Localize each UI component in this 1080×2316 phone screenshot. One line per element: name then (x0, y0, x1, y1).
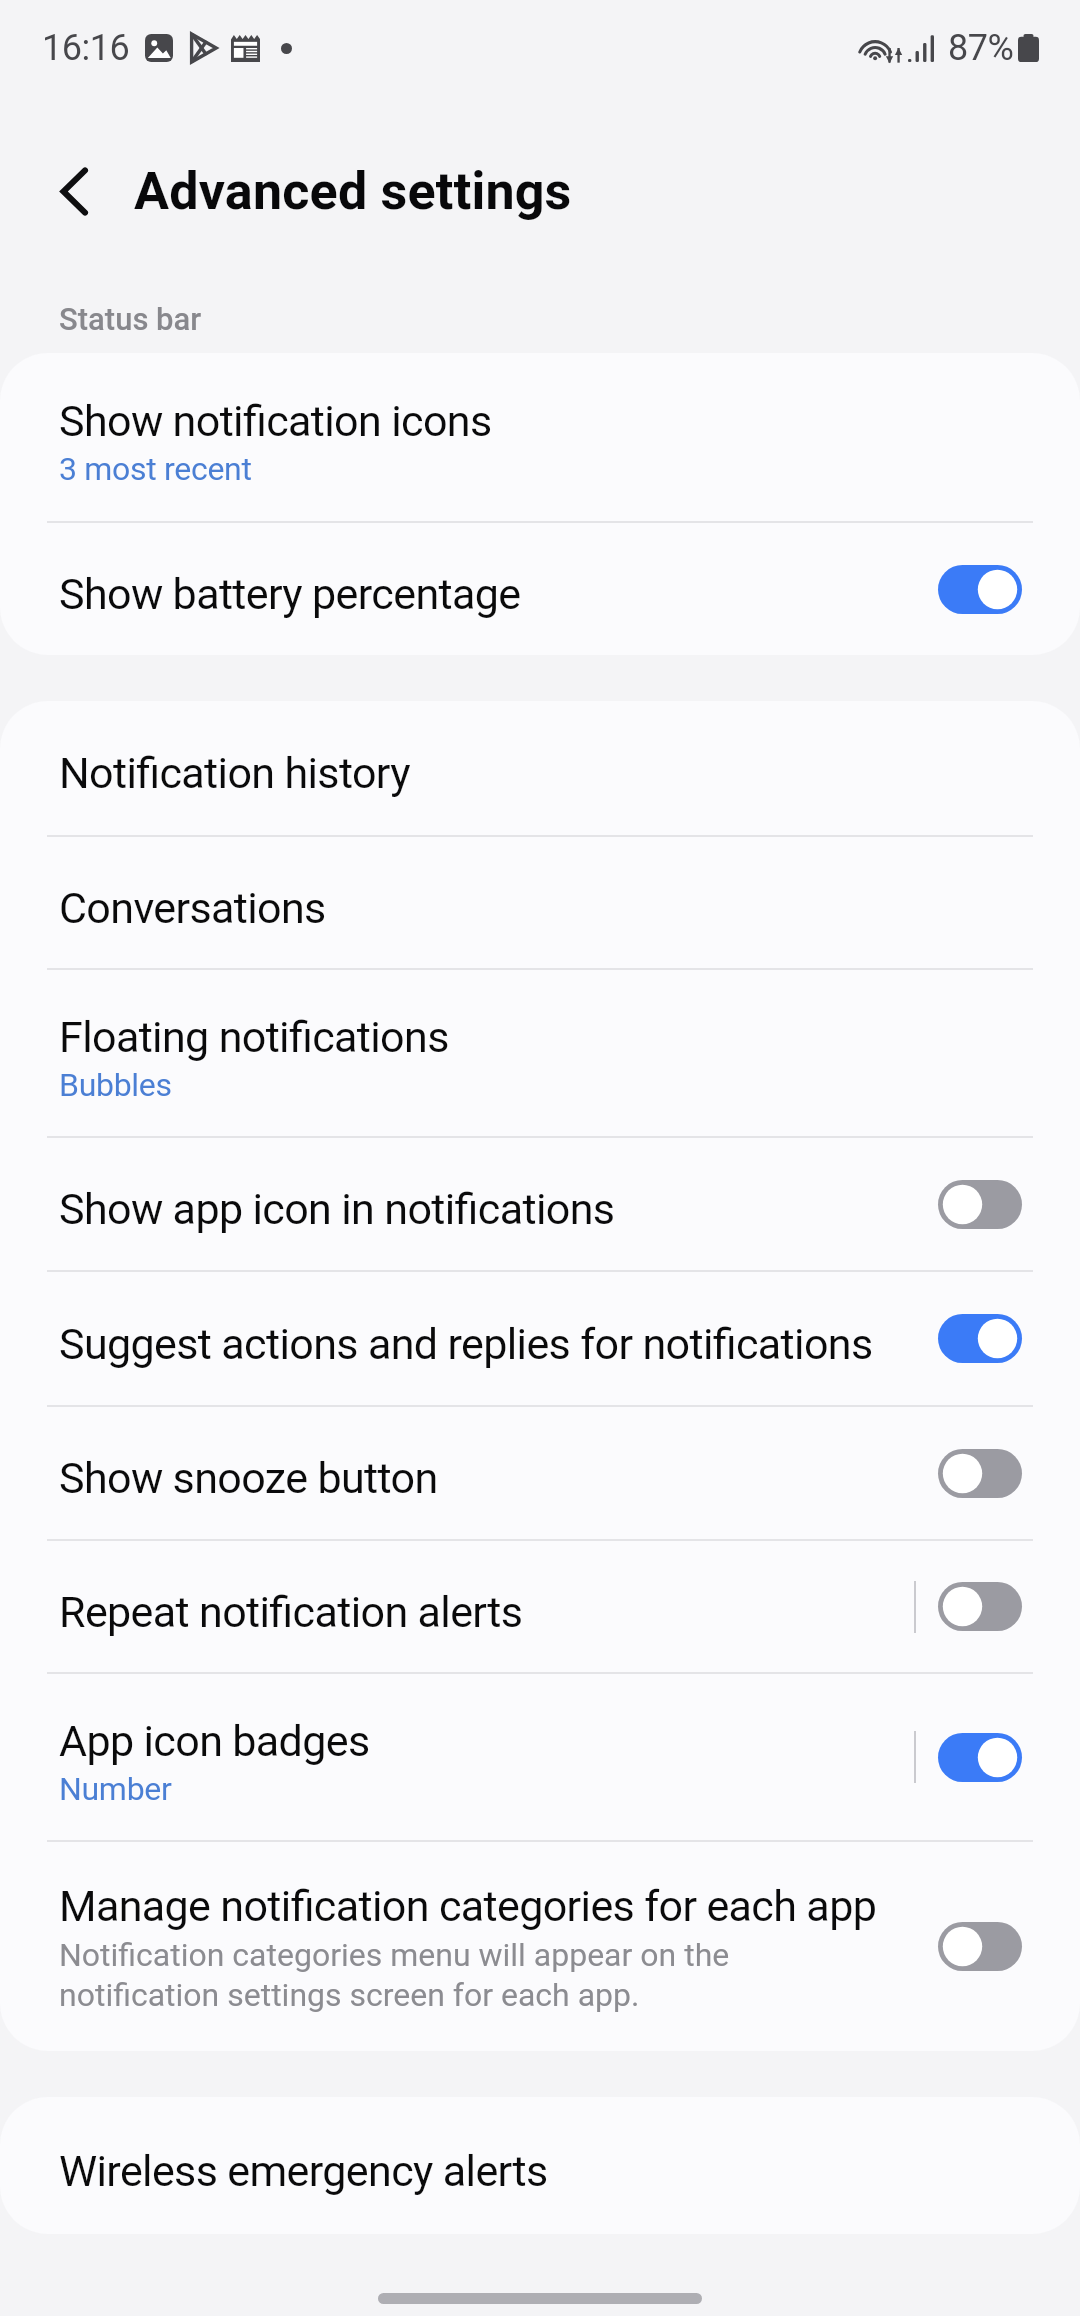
button[interactable]: Show battery percentage (938, 565, 1022, 614)
button[interactable]: Show app icon in notifications (0, 1138, 1080, 1270)
button[interactable]: Conversations (0, 837, 1080, 968)
staticText: 3 most recent (59, 450, 252, 488)
staticText: Show app icon in notifications (59, 1184, 615, 1234)
button[interactable]: Suggest actions and replies for notifica… (938, 1314, 1022, 1363)
button[interactable]: Notification history (0, 701, 1080, 835)
button[interactable]: App icon badges (0, 1674, 1080, 1840)
staticText: App icon badges (59, 1716, 370, 1766)
button[interactable]: Manage notification categories for each … (938, 1922, 1022, 1971)
staticText: Wireless emergency alerts (59, 2146, 548, 2196)
staticText: Floating notifications (59, 1012, 449, 1062)
staticText: Bubbles (59, 1066, 172, 1104)
staticText: 16:16 (42, 27, 130, 69)
button[interactable]: Floating notifications (0, 970, 1080, 1136)
button[interactable]: Repeat notification alerts (0, 1541, 1080, 1672)
staticText: Show battery percentage (59, 569, 521, 619)
button[interactable]: App icon badges (938, 1733, 1022, 1782)
staticText: Advanced settings (134, 161, 572, 222)
staticText: Show notification icons (59, 396, 492, 446)
staticText: Show snooze button (59, 1453, 438, 1503)
staticText: Number (59, 1770, 172, 1808)
button[interactable]: Repeat notification alerts (938, 1582, 1022, 1631)
button[interactable]: Show app icon in notifications (938, 1180, 1022, 1229)
button[interactable]: Show battery percentage (0, 523, 1080, 655)
button[interactable]: Back (32, 149, 116, 233)
staticText: Notification categories menu will appear… (59, 1936, 897, 2014)
button[interactable]: Suggest actions and replies for notifica… (0, 1272, 1080, 1405)
staticText: Status bar (59, 301, 202, 337)
staticText: Manage notification categories for each … (59, 1881, 877, 1931)
staticText: Suggest actions and replies for notifica… (59, 1319, 873, 1369)
button[interactable]: Wireless emergency alerts (0, 2097, 1080, 2234)
staticText: Notification history (59, 748, 410, 798)
button[interactable]: Show notification icons (0, 353, 1080, 521)
button[interactable]: Show snooze button (0, 1407, 1080, 1539)
staticText: 87% (948, 27, 1014, 69)
staticText: Repeat notification alerts (59, 1587, 523, 1637)
staticText: Conversations (59, 883, 326, 933)
button[interactable]: Manage notification categories for each … (0, 1842, 1080, 2051)
button[interactable]: Show snooze button (938, 1449, 1022, 1498)
